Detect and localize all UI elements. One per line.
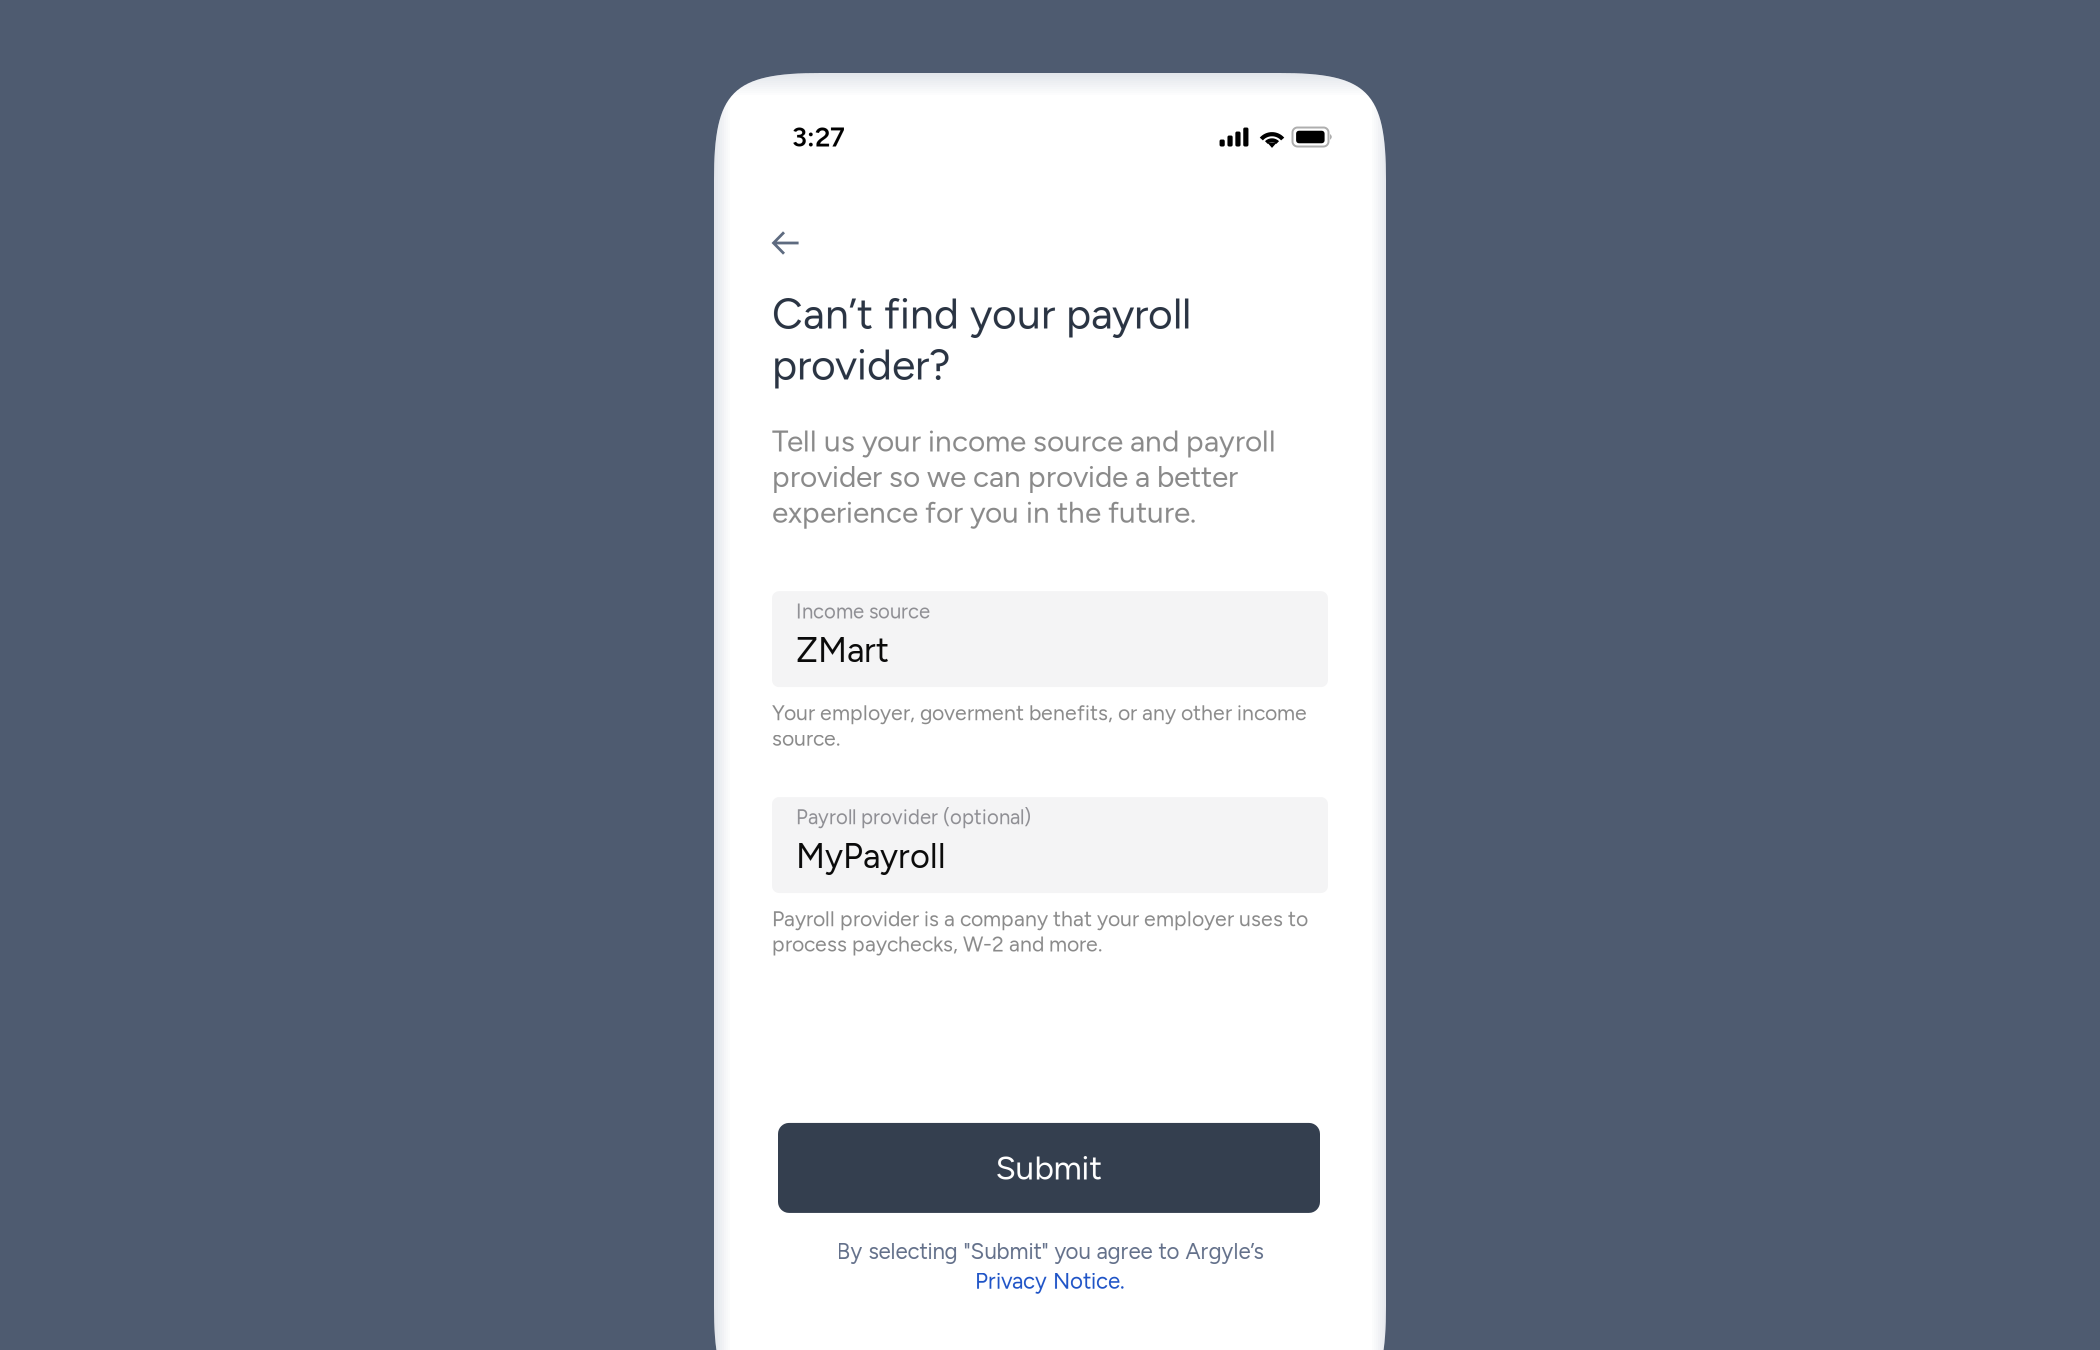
staticText: Privacy Notice.	[975, 1268, 1125, 1294]
staticText: Tell us your income source and payroll p…	[772, 423, 1276, 530]
staticText: Payroll provider (optional)	[796, 805, 1031, 829]
staticText: ZMart	[796, 629, 889, 671]
staticText: Your employer, goverment benefits, or an…	[772, 700, 1307, 751]
button[interactable]: Privacy Notice.	[975, 1268, 1125, 1294]
staticText: 3:27	[792, 121, 845, 153]
staticText: Submit	[995, 1148, 1102, 1188]
button[interactable]: Payroll provider (optional)	[772, 797, 1328, 893]
button[interactable]: Submit	[778, 1123, 1320, 1213]
staticText: Can’t find your payroll provider?	[772, 288, 1191, 390]
staticText: MyPayroll	[796, 835, 946, 877]
staticText: By selecting "Submit" you agree to Argyl…	[836, 1238, 1263, 1265]
staticText: Payroll provider is a company that your …	[772, 906, 1308, 957]
staticText: Income source	[796, 599, 930, 624]
button[interactable]: Income source	[772, 591, 1328, 687]
button[interactable]: Back	[772, 221, 828, 265]
